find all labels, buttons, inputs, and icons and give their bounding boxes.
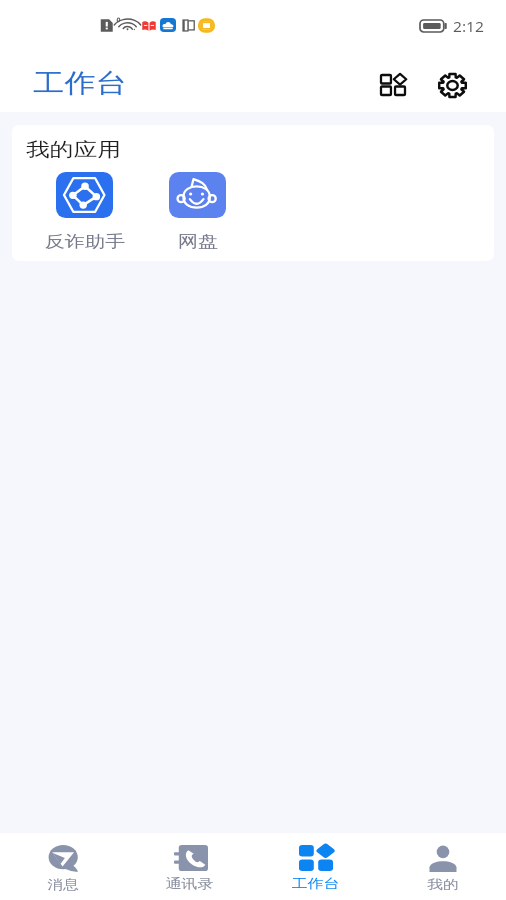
button[interactable]: 反诈助手 <box>28 172 141 252</box>
staticText: 工作台 <box>292 875 339 891</box>
button[interactable]: 网盘 <box>141 172 254 252</box>
staticText: 网盘 <box>178 232 218 252</box>
staticText: 工作台 <box>33 67 127 100</box>
button[interactable]: 消息 <box>0 833 126 900</box>
staticText: 我的应用 <box>26 138 121 162</box>
staticText: 反诈助手 <box>45 232 125 252</box>
button[interactable]: Settings <box>430 63 473 106</box>
staticText: 消息 <box>47 876 79 892</box>
staticText: 2:12 <box>453 16 484 36</box>
button[interactable]: 我的 <box>379 833 506 900</box>
staticText: 我的 <box>427 876 459 892</box>
button[interactable]: Apps <box>372 63 415 106</box>
button[interactable]: 工作台 <box>252 833 379 900</box>
button[interactable]: 通讯录 <box>126 833 252 900</box>
staticText: 通讯录 <box>166 875 213 891</box>
